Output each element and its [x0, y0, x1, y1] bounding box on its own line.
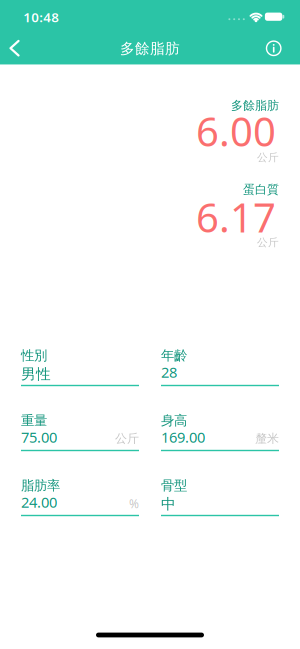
staticText: 公斤	[257, 236, 279, 249]
button[interactable]: Back	[2, 35, 26, 61]
staticText: 多餘脂肪	[120, 40, 180, 58]
staticText: 身高	[161, 412, 187, 429]
staticText: 釐米	[255, 431, 279, 446]
button[interactable]: Info	[260, 35, 287, 61]
staticText: 169.00	[161, 427, 205, 447]
staticText: %	[129, 495, 139, 511]
staticText: 公斤	[115, 431, 139, 446]
staticText: 男性	[21, 365, 51, 383]
staticText: 重量	[21, 412, 47, 429]
staticText: 年齡	[161, 347, 187, 364]
staticText: 公斤	[257, 151, 279, 164]
staticText: 骨型	[161, 477, 187, 494]
staticText: 6.17	[196, 190, 276, 243]
staticText: 脂肪率	[21, 477, 60, 494]
staticText: 6.00	[196, 104, 276, 157]
staticText: 中	[161, 495, 176, 513]
staticText: 75.00	[21, 427, 57, 447]
staticText: 10:48	[23, 8, 59, 26]
staticText: 24.00	[21, 492, 57, 512]
staticText: 性別	[21, 347, 47, 364]
staticText: 蛋白質	[243, 182, 279, 197]
staticText: 多餘脂肪	[231, 98, 279, 113]
staticText: 28	[161, 362, 177, 382]
